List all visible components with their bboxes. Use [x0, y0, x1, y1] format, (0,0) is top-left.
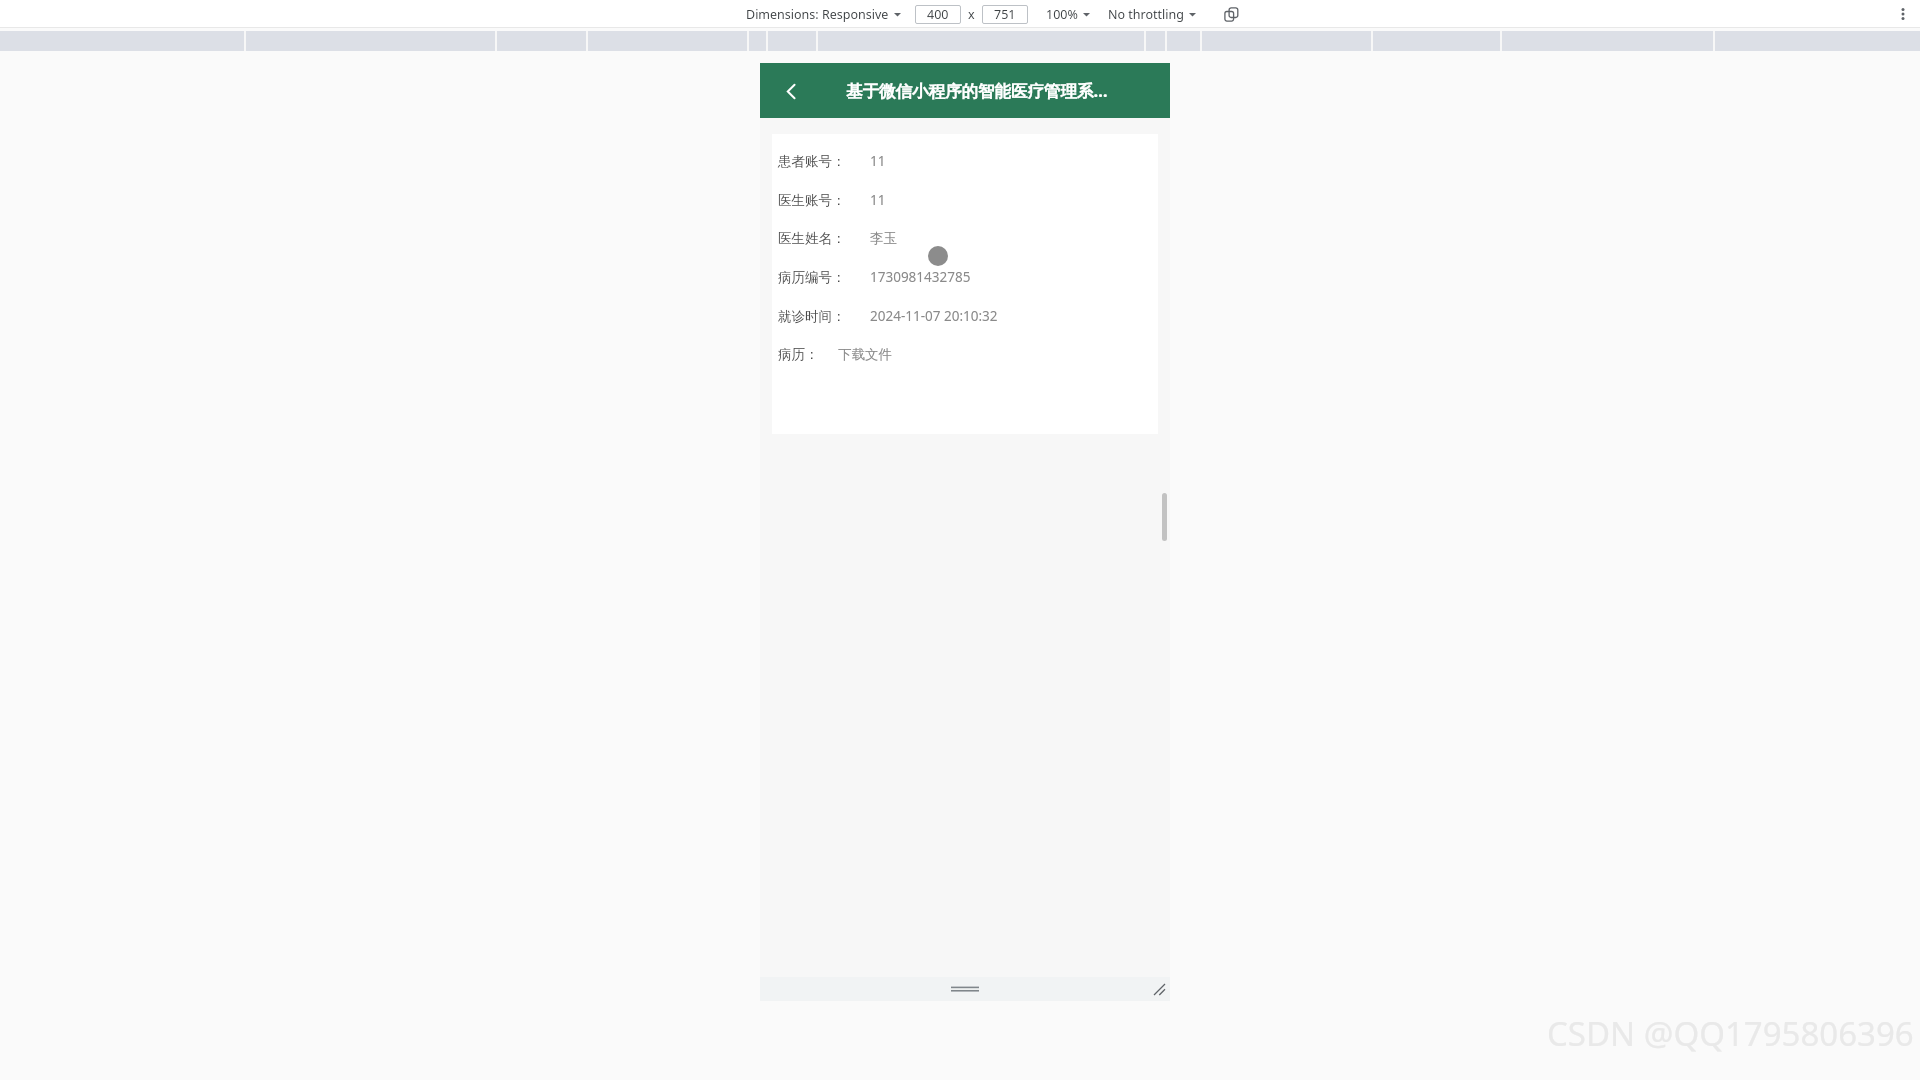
staticText: 1730981432785 [870, 268, 971, 286]
staticText: 医生姓名： [778, 230, 846, 247]
staticText: CSDN @QQ1795806396 [1547, 1011, 1914, 1056]
staticText: 11 [870, 152, 886, 170]
button[interactable]: 病历： [772, 346, 1158, 363]
button[interactable]: No throttling [1106, 4, 1198, 25]
staticText: 基于微信小程序的智能医疗管理系… [846, 79, 1108, 102]
staticText: 病历： [778, 346, 819, 363]
staticText: 11 [870, 191, 886, 209]
button[interactable]: 400 [915, 5, 961, 24]
staticText: 751 [994, 6, 1016, 23]
button[interactable]: 医生账号： [772, 191, 1158, 209]
staticText: 病历编号： [778, 269, 846, 286]
staticText: 400 [927, 6, 949, 23]
button[interactable]: 病历编号： [772, 268, 1158, 286]
staticText: x [968, 6, 975, 23]
button[interactable]: 751 [982, 5, 1028, 24]
staticText: 医生账号： [778, 192, 846, 209]
staticText: 100% [1046, 6, 1078, 23]
button[interactable]: Toggle device rotation [1220, 3, 1242, 25]
staticText: 下载文件 [838, 346, 892, 363]
button[interactable]: Resize [1154, 984, 1165, 995]
staticText: 李玉 [870, 230, 897, 247]
button[interactable]: 医生姓名： [772, 230, 1158, 247]
staticText: Dimensions: Responsive [746, 6, 889, 23]
button[interactable]: More options [1892, 3, 1914, 25]
staticText: No throttling [1108, 6, 1184, 23]
staticText: 就诊时间： [778, 308, 846, 325]
button[interactable]: 100% [1044, 4, 1092, 25]
button[interactable]: Dimensions: Responsive [744, 4, 903, 25]
staticText: 患者账号： [778, 153, 846, 170]
button[interactable]: Back [774, 74, 808, 108]
button[interactable]: 患者账号： [772, 152, 1158, 170]
staticText: 2024-11-07 20:10:32 [870, 307, 998, 325]
button[interactable]: 就诊时间： [772, 307, 1158, 325]
